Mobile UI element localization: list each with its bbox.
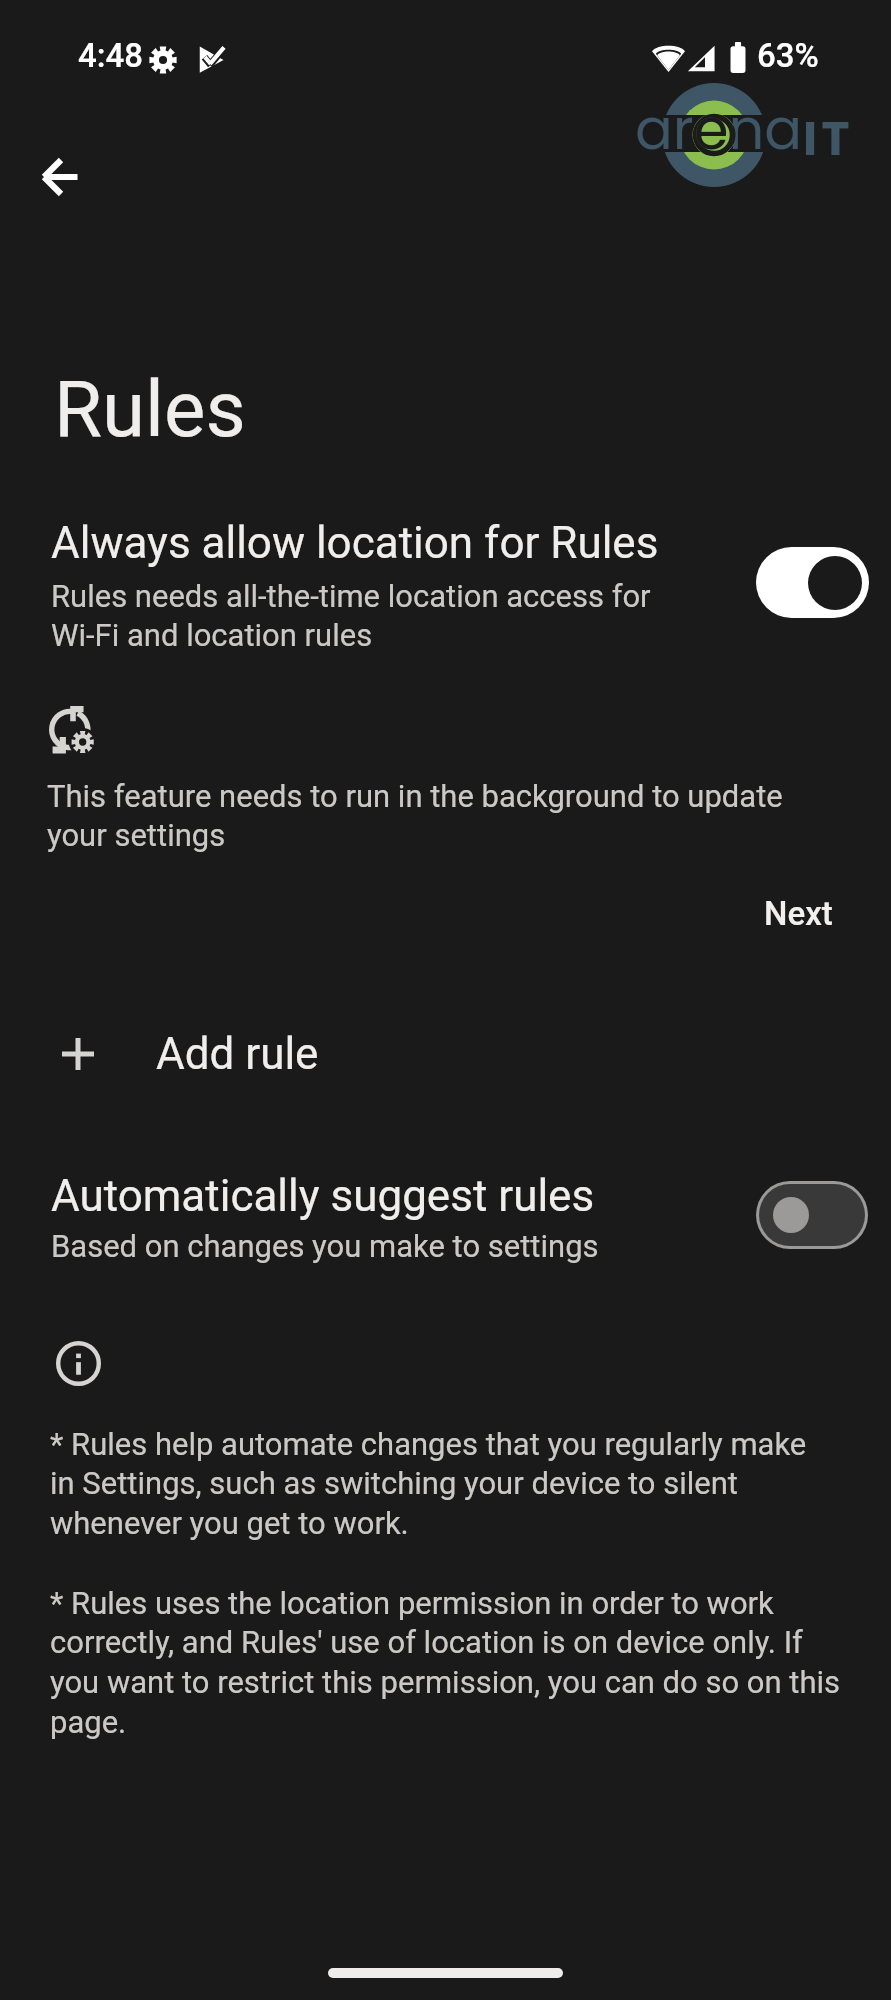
staticText: * Rules uses the location permission in … <box>50 1585 841 1741</box>
button[interactable]: Automatically suggest rules, off <box>759 1184 865 1246</box>
staticText: Rules <box>54 364 246 455</box>
staticText: IT <box>803 105 854 172</box>
button[interactable]: Always allow location for Rules, on <box>756 547 869 618</box>
staticText: Always allow location for Rules <box>51 517 751 569</box>
staticText: arena <box>635 90 803 168</box>
staticText: 4:48 <box>78 36 144 75</box>
staticText: 63% <box>757 36 819 75</box>
staticText: This feature needs to run in the backgro… <box>47 778 783 854</box>
staticText: Automatically suggest rules <box>51 1170 595 1222</box>
staticText: Add rule <box>156 1028 319 1080</box>
staticText: Next <box>764 894 833 933</box>
button[interactable]: Automatically suggest rules <box>0 1152 891 1282</box>
staticText: Rules needs all-the-time location access… <box>51 578 651 654</box>
staticText: * Rules help automate changes that you r… <box>50 1426 807 1542</box>
button[interactable]: Next <box>740 878 857 949</box>
button[interactable]: Back <box>12 129 108 225</box>
button[interactable]: Add rule <box>0 1002 891 1110</box>
button[interactable]: Always allow location for Rules <box>0 500 891 668</box>
staticText: arena <box>635 90 803 168</box>
staticText: Based on changes you make to settings <box>51 1228 599 1264</box>
